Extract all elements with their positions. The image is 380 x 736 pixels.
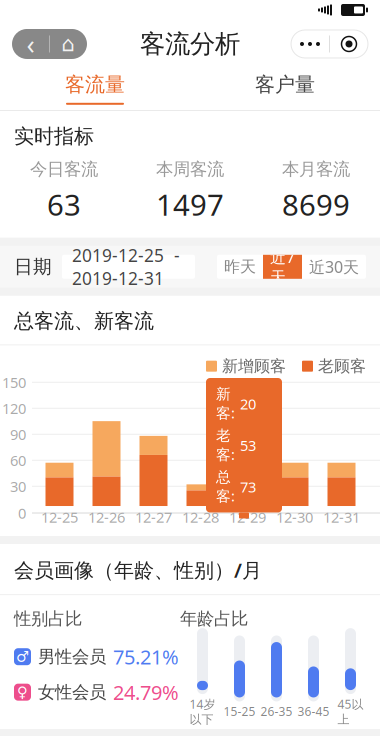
staticText: 本月客流	[282, 159, 350, 180]
staticText: 男性会员	[38, 646, 106, 667]
staticText: 12-26	[88, 507, 125, 527]
staticText: 客户量	[255, 72, 315, 97]
staticText: 老客:	[216, 426, 235, 464]
staticText: 75.21%	[113, 643, 179, 670]
staticText: 今日客流	[30, 159, 98, 180]
staticText: 36-45	[297, 703, 329, 719]
staticText: 15-25	[223, 703, 255, 719]
button[interactable]: 客流量	[0, 67, 190, 110]
staticText: 63	[47, 185, 81, 224]
button[interactable]: 客户量	[190, 67, 380, 110]
staticText: ♂	[16, 648, 29, 665]
staticText: 日期	[14, 255, 52, 278]
staticText: 1497	[156, 185, 224, 224]
staticText: 老顾客	[318, 356, 366, 376]
staticText: 年龄占比	[180, 608, 248, 629]
staticText: ⌂	[61, 32, 75, 56]
button[interactable]: 昨天	[217, 255, 263, 279]
staticText: 90	[10, 424, 26, 444]
staticText: 0	[18, 503, 26, 523]
staticText: 2019-12-25 - 2019-12-31	[72, 244, 185, 290]
staticText: 本周客流	[156, 159, 224, 180]
staticText: 性别占比	[14, 608, 82, 629]
staticText: 14岁以下	[189, 696, 215, 727]
staticText: ‹	[26, 26, 34, 62]
staticText: 60	[10, 450, 26, 470]
staticText: 近30天	[309, 256, 359, 277]
button[interactable]: 2019-12-25 - 2019-12-31	[62, 255, 195, 279]
staticText: 新增顾客	[222, 356, 286, 376]
staticText: 8699	[282, 185, 350, 224]
staticText: 45以上	[337, 696, 363, 727]
button[interactable]: 近30天	[302, 255, 366, 279]
staticText: ♀	[17, 684, 28, 700]
staticText: 73	[240, 477, 256, 496]
staticText: 实时指标	[14, 124, 94, 149]
staticText: 24.79%	[113, 679, 179, 705]
staticText: 客流分析	[140, 28, 240, 59]
staticText: 12-31	[323, 507, 360, 527]
button[interactable]: 近7天	[263, 255, 302, 279]
staticText: 26-35	[260, 703, 292, 719]
staticText: 150	[2, 372, 26, 392]
staticText: 总客:	[216, 468, 235, 505]
staticText: 12-30	[276, 507, 313, 527]
staticText: 12-29	[229, 507, 266, 527]
staticText: 会员画像（年龄、性别）/月	[14, 557, 262, 583]
staticText: 总客流、新客流	[14, 309, 154, 333]
staticText: 女性会员	[38, 681, 106, 703]
staticText: 12-25	[41, 507, 78, 527]
staticText: 新客:	[216, 385, 235, 422]
staticText: 客流量	[65, 72, 125, 97]
button[interactable]: More options	[291, 30, 368, 58]
staticText: 53	[240, 435, 256, 455]
staticText: 120	[2, 398, 26, 418]
button[interactable]: Back and home	[12, 29, 87, 59]
staticText: 昨天	[224, 257, 256, 277]
staticText: 12-27	[135, 507, 172, 527]
staticText: 30	[10, 476, 26, 496]
staticText: 12-28	[182, 507, 219, 527]
staticText: 近7天	[270, 246, 295, 287]
staticText: 20	[240, 394, 256, 413]
